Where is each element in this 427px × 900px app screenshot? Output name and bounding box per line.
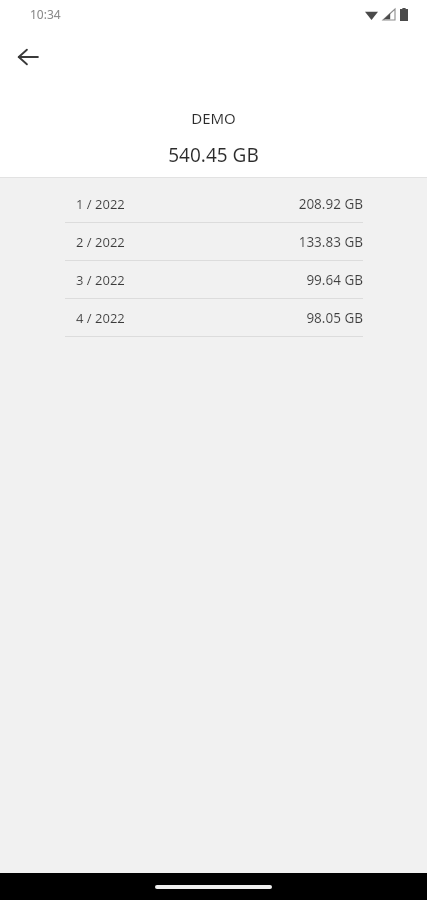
staticText: 208.92 GB [298, 195, 363, 213]
staticText: 10:34 [30, 6, 61, 22]
staticText: 99.64 GB [306, 271, 363, 289]
staticText: DEMO [191, 108, 236, 128]
staticText: 540.45 GB [168, 142, 259, 168]
staticText: 2 / 2022 [76, 233, 125, 251]
staticText: 98.05 GB [306, 309, 363, 327]
button[interactable]: 2 / 2022 [0, 223, 427, 261]
button[interactable]: 3 / 2022 [0, 261, 427, 299]
button[interactable]: 4 / 2022 [0, 299, 427, 337]
staticText: 1 / 2022 [76, 195, 125, 213]
staticText: 133.83 GB [298, 233, 363, 251]
button[interactable]: Back [8, 37, 48, 77]
button[interactable]: 1 / 2022 [0, 185, 427, 223]
staticText: 4 / 2022 [76, 309, 125, 327]
staticText: 3 / 2022 [76, 271, 125, 289]
